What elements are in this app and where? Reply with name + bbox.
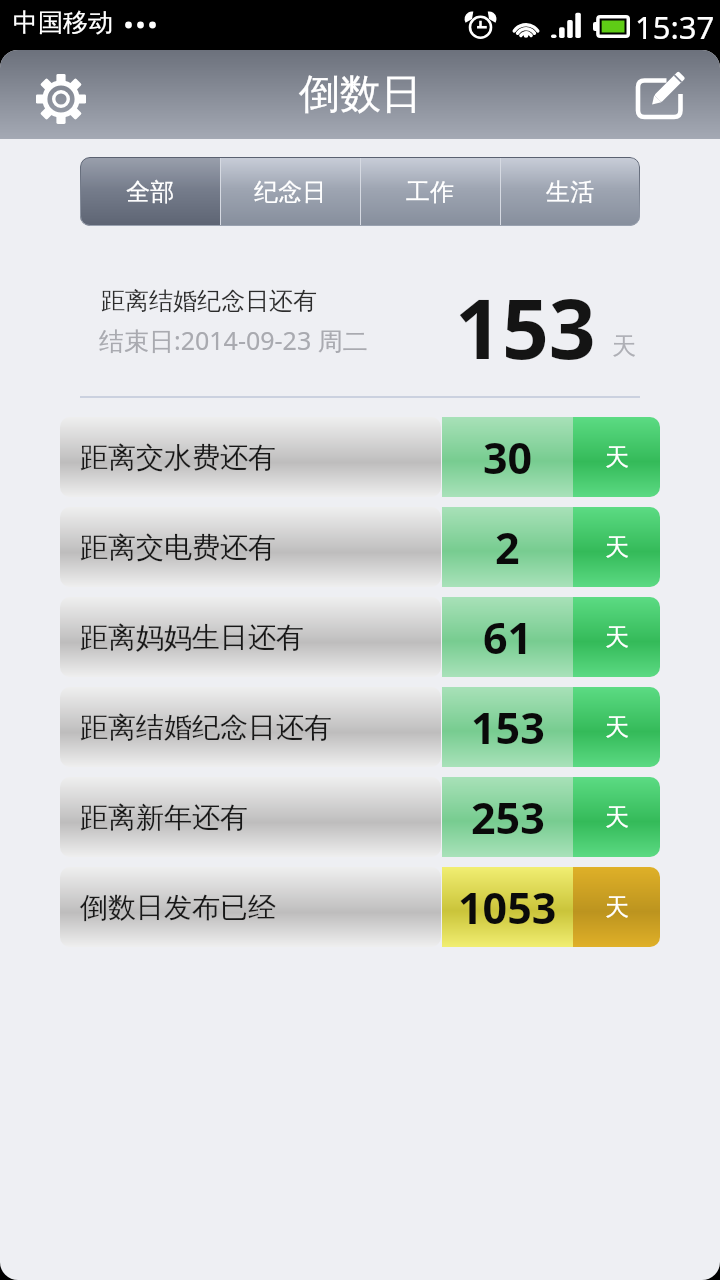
staticText: 倒数日 bbox=[299, 69, 422, 121]
button[interactable]: 全部 bbox=[80, 157, 220, 226]
staticText: 天 bbox=[605, 892, 629, 922]
staticText: 253 bbox=[471, 788, 545, 847]
staticText: 距离交电费还有 bbox=[80, 530, 276, 565]
button[interactable]: Settings bbox=[21, 59, 101, 139]
staticText: 天 bbox=[605, 802, 629, 832]
staticText: 天 bbox=[605, 532, 629, 562]
staticText: 倒数日发布已经 bbox=[80, 890, 276, 925]
staticText: 30 bbox=[483, 428, 533, 487]
staticText: 距离新年还有 bbox=[80, 800, 248, 835]
staticText: 天 bbox=[605, 712, 629, 742]
button[interactable]: 距离交电费还有 bbox=[60, 507, 660, 587]
staticText: 距离妈妈生日还有 bbox=[80, 620, 304, 655]
button[interactable]: 工作 bbox=[360, 157, 500, 226]
staticText: 153 bbox=[455, 271, 596, 366]
button[interactable]: 距离妈妈生日还有 bbox=[60, 597, 660, 677]
staticText: 距离交水费还有 bbox=[80, 440, 276, 475]
staticText: 天 bbox=[605, 442, 629, 472]
button[interactable]: 距离新年还有 bbox=[60, 777, 660, 857]
button[interactable]: 距离交水费还有 bbox=[60, 417, 660, 497]
staticText: 全部 bbox=[126, 177, 174, 207]
staticText: 生活 bbox=[546, 177, 594, 207]
staticText: 距离结婚纪念日还有 bbox=[80, 710, 332, 745]
staticText: 天 bbox=[605, 622, 629, 652]
staticText: 距离结婚纪念日还有 bbox=[101, 286, 317, 316]
staticText: 纪念日 bbox=[254, 177, 326, 207]
staticText: 天 bbox=[612, 331, 636, 361]
staticText: 1053 bbox=[458, 878, 557, 937]
staticText: 15:37 bbox=[635, 6, 715, 48]
staticText: 中国移动 bbox=[13, 7, 113, 38]
staticText: 结束日:2014-09-23 周二 bbox=[99, 323, 368, 357]
staticText: 工作 bbox=[406, 177, 454, 207]
button[interactable]: 距离结婚纪念日还有 bbox=[0, 270, 720, 365]
staticText: 153 bbox=[471, 698, 545, 757]
button[interactable]: 纪念日 bbox=[220, 157, 360, 226]
button[interactable]: 倒数日发布已经 bbox=[60, 867, 660, 947]
staticText: 61 bbox=[483, 608, 533, 667]
button[interactable]: New countdown bbox=[619, 56, 699, 136]
button[interactable]: 生活 bbox=[500, 157, 640, 226]
button[interactable]: 距离结婚纪念日还有 bbox=[60, 687, 660, 767]
staticText: 2 bbox=[495, 518, 520, 577]
